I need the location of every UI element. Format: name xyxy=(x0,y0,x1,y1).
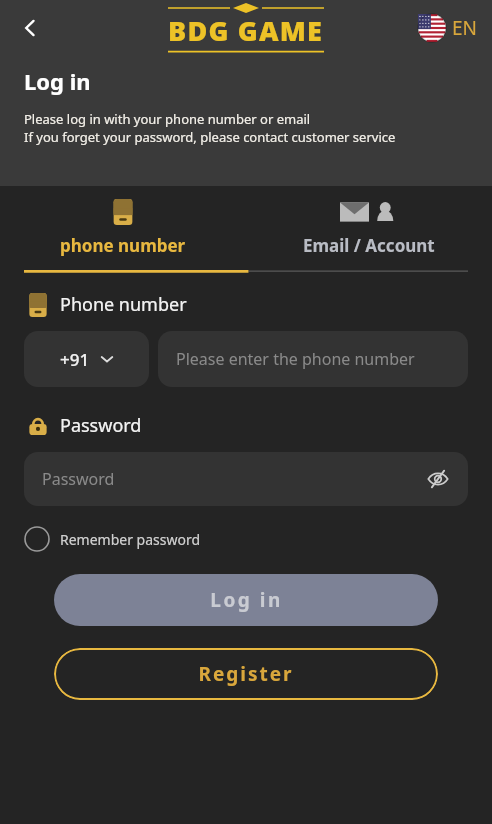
button[interactable]: phone number xyxy=(0,186,246,270)
button[interactable]: Show password xyxy=(422,463,454,495)
button[interactable]: Please enter the phone number xyxy=(158,331,468,387)
staticText: Password xyxy=(42,468,115,490)
staticText: Email / Account xyxy=(303,234,435,257)
staticText: +91 xyxy=(60,348,90,371)
button[interactable]: +91 xyxy=(24,331,149,387)
button[interactable]: EN xyxy=(418,14,478,42)
staticText: Password xyxy=(60,413,142,438)
staticText: If you forget your password, please cont… xyxy=(24,128,396,146)
button[interactable]: Email / Account xyxy=(246,186,492,270)
staticText: Register xyxy=(198,661,294,687)
staticText: Please log in with your phone number or … xyxy=(24,110,311,128)
staticText: Log in xyxy=(210,587,283,613)
staticText: BDG GAME xyxy=(168,12,324,49)
button[interactable]: Password xyxy=(24,452,468,506)
staticText: EN xyxy=(452,15,478,41)
button[interactable]: Back xyxy=(6,4,54,52)
staticText: Log in xyxy=(24,66,91,96)
staticText: phone number xyxy=(60,234,186,257)
staticText: Remember password xyxy=(60,530,201,549)
button[interactable]: Remember password xyxy=(24,526,201,552)
button[interactable]: Register xyxy=(54,648,438,700)
staticText: Phone number xyxy=(60,292,187,317)
staticText: Please enter the phone number xyxy=(176,348,415,370)
button[interactable]: Log in xyxy=(54,574,438,626)
